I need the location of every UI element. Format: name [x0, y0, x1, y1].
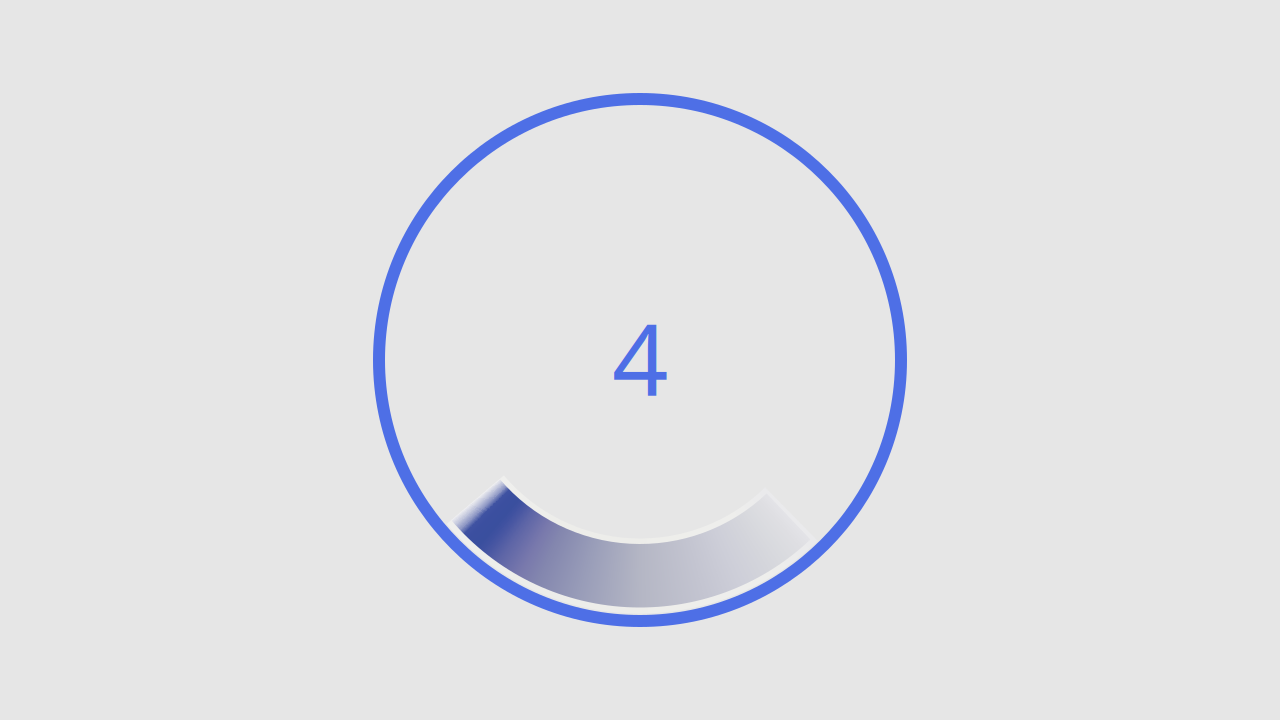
button[interactable]: Countdown timer, 4 seconds remaining	[360, 80, 920, 640]
staticText: 4	[612, 292, 668, 423]
